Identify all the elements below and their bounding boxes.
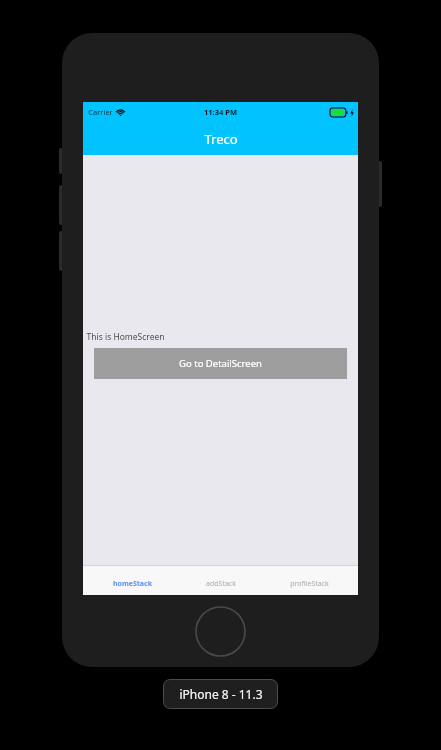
button[interactable]: homeStack bbox=[92, 566, 172, 595]
staticText: 11:34 PM bbox=[204, 107, 237, 117]
staticText: profileStack bbox=[290, 579, 329, 589]
staticText: iPhone 8 - 11.3 bbox=[179, 686, 263, 702]
staticText: addStack bbox=[206, 579, 236, 589]
staticText: Go to DetailScreen bbox=[179, 357, 262, 370]
button[interactable]: Home bbox=[195, 606, 246, 657]
button[interactable]: profileStack bbox=[269, 566, 349, 595]
button[interactable]: addStack bbox=[181, 566, 261, 595]
staticText: Treco bbox=[204, 130, 238, 148]
staticText: This is HomeScreen bbox=[86, 331, 165, 343]
staticText: Carrier bbox=[88, 107, 113, 117]
button[interactable]: Go to DetailScreen bbox=[94, 348, 347, 379]
button[interactable]: iPhone 8 - 11.3 bbox=[163, 679, 278, 709]
staticText: homeStack bbox=[113, 579, 152, 589]
